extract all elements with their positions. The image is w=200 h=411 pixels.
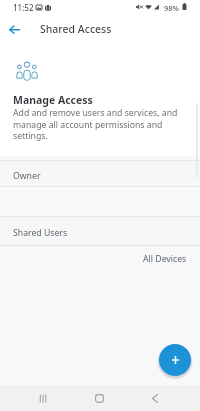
button[interactable]: Recent apps bbox=[29, 385, 56, 411]
button[interactable]: Home bbox=[85, 385, 113, 411]
staticText: 11:52 bbox=[13, 2, 34, 13]
button[interactable]: Back bbox=[3, 18, 25, 40]
staticText: Owner bbox=[13, 170, 41, 182]
button[interactable]: Back bbox=[141, 385, 169, 411]
button[interactable]: Owner bbox=[0, 161, 200, 186]
staticText: Shared Users bbox=[13, 227, 68, 239]
button[interactable]: Shared Users bbox=[0, 217, 200, 245]
staticText: Shared Access bbox=[40, 22, 112, 36]
staticText: Manage Access bbox=[13, 93, 93, 107]
staticText: All Devices bbox=[143, 253, 187, 265]
staticText: 98% bbox=[164, 3, 179, 13]
staticText: Add and remove users and services, and m… bbox=[13, 107, 178, 142]
button[interactable]: Add bbox=[159, 344, 191, 376]
